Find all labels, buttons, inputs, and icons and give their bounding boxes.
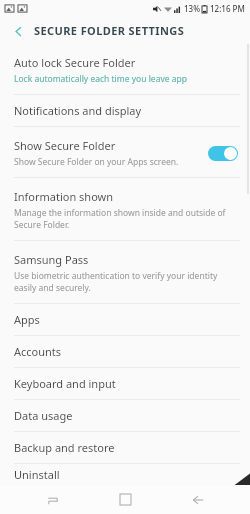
staticText: Backup and restore — [14, 440, 115, 455]
button[interactable]: Recents — [33, 485, 73, 514]
staticText: Data usage — [14, 408, 73, 423]
button[interactable]: Notifications and display — [0, 95, 250, 126]
button[interactable]: Accounts — [0, 336, 250, 367]
staticText: Show Secure Folder on your Apps screen. — [14, 156, 179, 168]
button[interactable]: Show Secure Folder — [0, 127, 250, 177]
staticText: Show Secure Folder — [14, 138, 116, 153]
button[interactable]: Home — [105, 485, 145, 514]
button[interactable]: Keyboard and input — [0, 368, 250, 399]
staticText: Accounts — [14, 344, 62, 359]
staticText: Samsung Pass — [14, 252, 89, 267]
staticText: Notifications and display — [14, 103, 142, 118]
staticText: Uninstall — [14, 467, 60, 482]
staticText: Auto lock Secure Folder — [14, 55, 136, 70]
staticText: 12:16 PM — [210, 3, 245, 14]
staticText: Keyboard and input — [14, 376, 116, 391]
staticText: Information shown — [14, 189, 114, 204]
button[interactable]: Back — [178, 485, 218, 514]
button[interactable]: Backup and restore — [0, 432, 250, 463]
button[interactable]: Show Secure Folder toggle — [206, 143, 240, 163]
staticText: Use biometric authentication to verify y… — [14, 270, 218, 294]
button[interactable]: Information shown — [0, 178, 250, 240]
staticText: SECURE FOLDER SETTINGS — [34, 23, 185, 38]
button[interactable]: Uninstall — [0, 464, 250, 485]
staticText: Apps — [14, 312, 40, 327]
staticText: Lock automatically each time you leave a… — [14, 73, 187, 85]
button[interactable]: Back — [8, 21, 28, 41]
button[interactable]: Samsung Pass — [0, 241, 250, 303]
button[interactable]: Auto lock Secure Folder — [0, 44, 250, 94]
button[interactable]: Apps — [0, 304, 250, 335]
staticText: Manage the information shown inside and … — [14, 207, 226, 231]
staticText: 13% — [184, 3, 200, 14]
button[interactable]: Data usage — [0, 400, 250, 431]
